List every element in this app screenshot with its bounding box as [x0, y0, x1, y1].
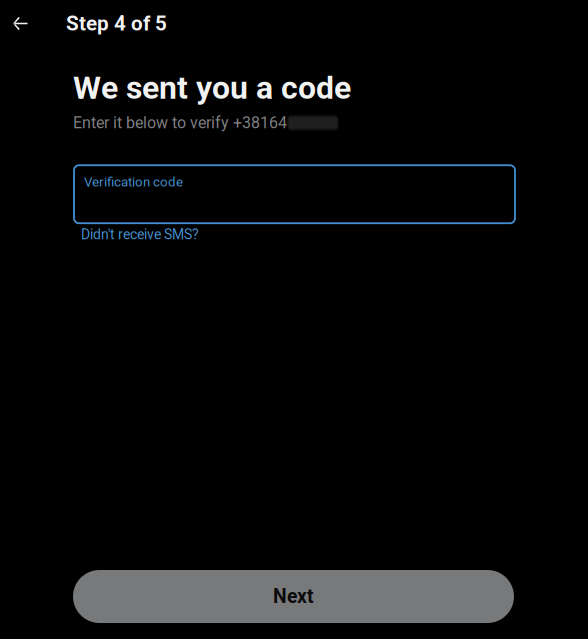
button[interactable]: Verification code — [74, 165, 515, 223]
staticText: We sent you a code — [73, 69, 351, 106]
staticText: Didn't receive SMS? — [81, 226, 199, 243]
staticText: Step 4 of 5 — [66, 11, 167, 36]
staticText: Next — [273, 585, 314, 608]
button[interactable]: Back — [0, 1, 40, 45]
button[interactable]: Next — [73, 570, 514, 623]
staticText: Verification code — [84, 174, 183, 190]
button[interactable]: Didn't receive SMS? — [81, 226, 199, 243]
staticText: Enter it below to verify +38164 — [73, 113, 287, 132]
